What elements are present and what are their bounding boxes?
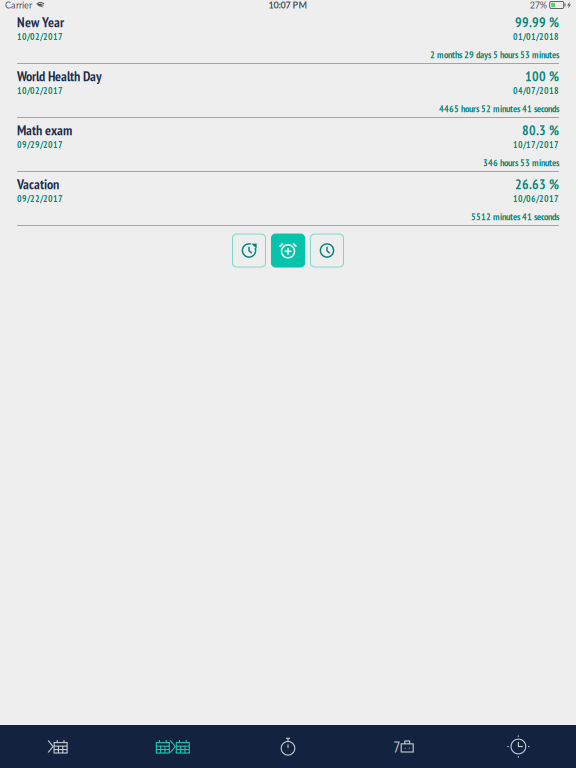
button[interactable]: Time zones [461,725,576,768]
button[interactable]: Math exam [0,118,576,172]
staticText: 346 hours 53 minutes [483,156,559,169]
staticText: 26.63 % [515,175,559,193]
staticText: 4465 hours 52 minutes 41 seconds [439,102,559,115]
button[interactable]: Vacation [0,172,576,226]
staticText: 10/02/2017 [17,30,63,43]
staticText: 100 % [525,67,559,85]
button[interactable]: History [310,234,343,267]
staticText: 10/06/2017 [513,192,559,205]
staticText: New Year [17,13,64,31]
staticText: 04/07/2018 [513,84,559,97]
staticText: 2 months 29 days 5 hours 53 minutes [430,48,559,61]
staticText: Carrier [5,0,32,10]
staticText: 09/22/2017 [17,192,63,205]
button[interactable]: New Year [0,10,576,64]
button[interactable]: Days until date [0,725,115,768]
button[interactable]: Restart timer [232,234,265,267]
staticText: 80.3 % [522,121,559,139]
button[interactable]: Add countdown [271,234,304,267]
staticText: 27% [530,0,547,10]
staticText: 10/17/2017 [513,138,559,151]
staticText: 10/02/2017 [17,84,63,97]
staticText: 7 [393,736,400,757]
staticText: Vacation [17,175,59,193]
staticText: 01/01/2018 [513,30,559,43]
staticText: World Health Day [17,67,102,85]
staticText: 10:07 PM [268,0,307,10]
button[interactable]: Stopwatch [230,725,346,768]
button[interactable]: Work days [346,725,461,768]
staticText: 09/29/2017 [17,138,63,151]
staticText: 99.99 % [515,13,559,31]
button[interactable]: World Health Day [0,64,576,118]
staticText: Math exam [17,121,72,139]
staticText: 5512 minutes 41 seconds [471,210,559,223]
button[interactable]: Date range [115,725,230,768]
